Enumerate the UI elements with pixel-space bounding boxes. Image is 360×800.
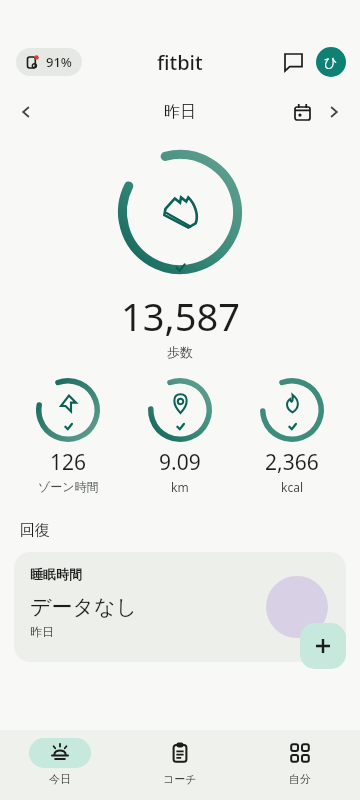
staticText: 昨日 (30, 624, 54, 639)
staticText: 自分 (289, 772, 311, 786)
button[interactable]: 今日 (0, 730, 120, 800)
button[interactable]: コーチ (120, 730, 240, 800)
staticText: 今日 (49, 772, 71, 786)
button[interactable]: 126 (18, 378, 118, 494)
button[interactable]: Add (300, 623, 346, 669)
button[interactable]: Calendar (286, 96, 318, 128)
staticText: コーチ (163, 772, 197, 786)
button[interactable]: 自分 (240, 730, 360, 800)
staticText: 歩数 (167, 344, 193, 360)
staticText: kcal (281, 479, 303, 495)
staticText: ゾーン時間 (38, 479, 99, 494)
button[interactable]: 睡眠時間 (14, 552, 346, 662)
button[interactable]: 9.09 (130, 378, 230, 495)
staticText: fitbit (157, 49, 203, 76)
staticText: 9.09 (159, 448, 201, 477)
staticText: km (171, 479, 189, 495)
staticText: 昨日 (164, 102, 196, 122)
button[interactable]: Messages (276, 45, 310, 79)
staticText: 2,366 (265, 448, 319, 477)
button[interactable]: Profile (316, 47, 346, 77)
staticText: 91% (46, 53, 72, 71)
button[interactable]: Previous day (10, 96, 42, 128)
staticText: ひ (324, 54, 338, 70)
button[interactable]: 2,366 (242, 378, 342, 495)
staticText: 回復 (20, 521, 50, 540)
staticText: 13,587 (121, 290, 240, 342)
button[interactable]: Next day (318, 96, 350, 128)
staticText: 126 (50, 448, 87, 477)
staticText: 睡眠時間 (30, 566, 82, 582)
button[interactable]: 91% (16, 48, 82, 76)
staticText: データなし (30, 594, 137, 620)
